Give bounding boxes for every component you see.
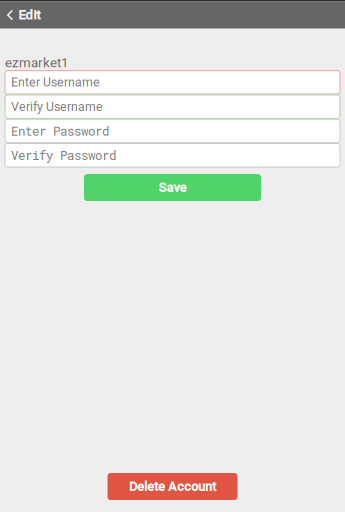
button[interactable]: Edit — [0, 1, 49, 28]
staticText: Verify Password — [11, 147, 116, 163]
staticText: Delete Account — [129, 479, 216, 494]
button[interactable]: Delete Account — [107, 473, 237, 500]
button[interactable]: Enter Password — [5, 119, 340, 143]
staticText: ezmarket1 — [5, 55, 68, 71]
staticText: Edit — [18, 7, 40, 23]
staticText: Enter Username — [11, 75, 100, 90]
staticText: Enter Password — [11, 123, 109, 139]
button[interactable]: Verify Username — [5, 95, 340, 118]
button[interactable]: Enter Username — [5, 71, 340, 94]
button[interactable]: Save — [84, 174, 261, 201]
staticText: Save — [158, 180, 186, 195]
staticText: Verify Username — [11, 99, 103, 114]
button[interactable]: Verify Password — [5, 143, 340, 167]
